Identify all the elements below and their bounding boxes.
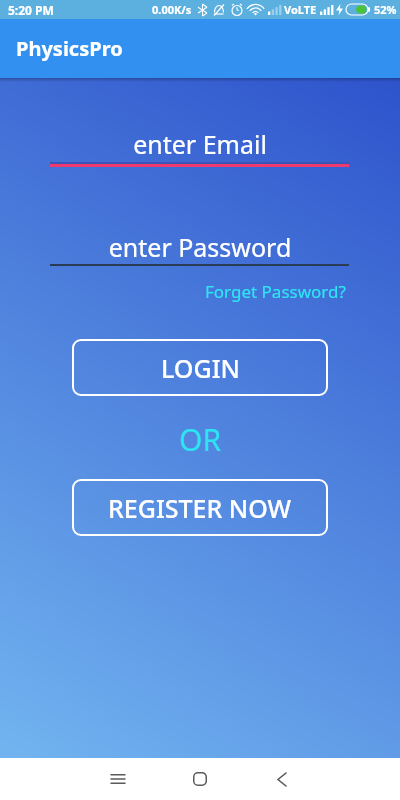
staticText: 5:20 PM bbox=[8, 2, 54, 18]
staticText: LOGIN bbox=[161, 351, 240, 385]
staticText: 0.00K/s bbox=[152, 2, 192, 17]
button[interactable] bbox=[50, 230, 349, 266]
staticText: enter Email bbox=[0, 127, 400, 161]
button[interactable]: REGISTER NOW bbox=[72, 479, 328, 536]
staticText: REGISTER NOW bbox=[108, 491, 292, 525]
staticText: enter Password bbox=[0, 230, 400, 264]
button[interactable] bbox=[50, 128, 349, 167]
button[interactable]: Forget Password? bbox=[205, 280, 346, 303]
staticText: VoLTE bbox=[284, 2, 317, 17]
staticText: OR bbox=[0, 419, 400, 460]
staticText: Forget Password? bbox=[205, 280, 346, 303]
button[interactable] bbox=[90, 758, 146, 800]
button[interactable] bbox=[172, 758, 228, 800]
staticText: PhysicsPro bbox=[16, 35, 123, 62]
staticText: 52% bbox=[374, 2, 397, 17]
button[interactable] bbox=[254, 758, 310, 800]
button[interactable]: LOGIN bbox=[72, 339, 328, 396]
